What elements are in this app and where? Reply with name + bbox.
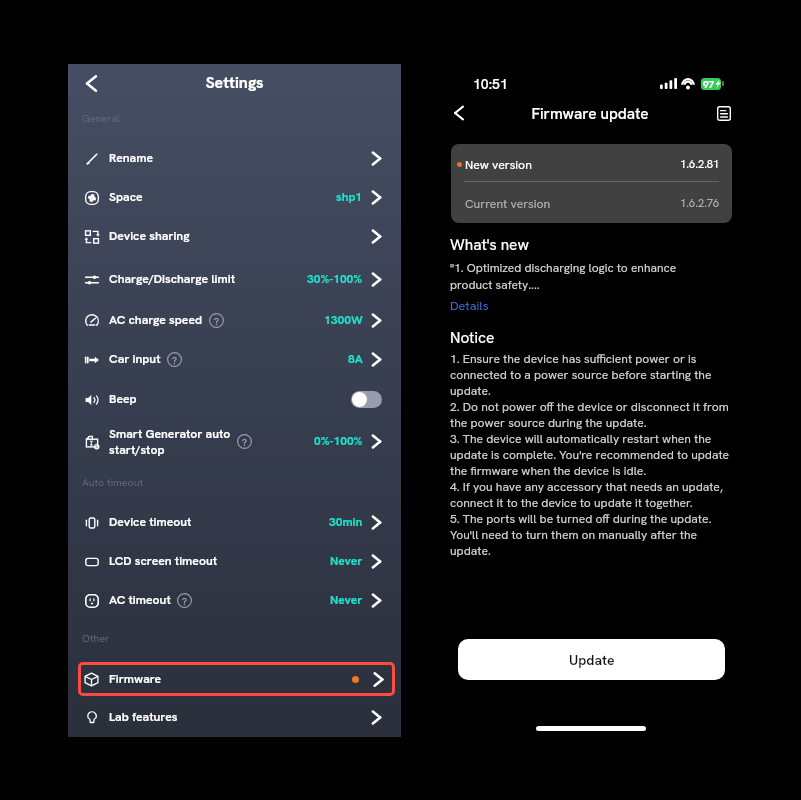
button[interactable]: Back (74, 66, 108, 100)
staticText: 8A (348, 351, 363, 367)
button[interactable]: Car input (68, 340, 401, 378)
staticText: 1. Ensure the device has sufficient powe… (450, 351, 733, 559)
button[interactable]: Space (68, 178, 401, 216)
staticText: Details (450, 297, 489, 313)
staticText: 10:51 (473, 75, 508, 93)
button[interactable]: Device timeout (68, 503, 401, 541)
staticText: ? (182, 595, 187, 607)
staticText: AC timeout (109, 592, 171, 608)
button[interactable]: Beep toggle (351, 391, 382, 408)
staticText: Settings (68, 72, 401, 93)
staticText: Device timeout (109, 514, 192, 530)
button[interactable]: Firmware (78, 662, 395, 696)
staticText: Current version (465, 196, 551, 212)
staticText: What's new (450, 235, 529, 255)
staticText: ? (242, 436, 247, 448)
staticText: General (82, 111, 120, 125)
staticText: ? (214, 315, 219, 327)
button[interactable]: Beep (68, 380, 401, 418)
staticText: Never (330, 553, 363, 569)
button[interactable]: LCD screen timeout (68, 542, 401, 580)
button[interactable]: Charge/Discharge limit (68, 260, 401, 298)
button[interactable]: Release notes (710, 99, 738, 127)
button[interactable]: Smart Generator auto start/stop (68, 422, 401, 460)
staticText: Car input (109, 351, 161, 367)
button[interactable]: Update (458, 639, 725, 680)
staticText: ? (172, 354, 177, 366)
staticText: 97 (703, 78, 715, 90)
staticText: 1.6.2.76 (680, 196, 720, 211)
staticText: Smart Generator auto start/stop (109, 426, 231, 457)
staticText: Auto timeout (82, 475, 144, 489)
staticText: Charge/Discharge limit (109, 271, 236, 287)
staticText: "1. Optimized discharging logic to enhan… (450, 260, 693, 293)
staticText: LCD screen timeout (109, 553, 218, 569)
staticText: Other (82, 631, 110, 645)
button[interactable]: Back (445, 99, 473, 127)
staticText: AC charge speed (109, 312, 203, 328)
button[interactable]: Details (450, 297, 489, 313)
staticText: New version (465, 157, 532, 173)
staticText: Device sharing (109, 228, 190, 244)
staticText: Lab features (109, 709, 178, 725)
staticText: 1300W (324, 312, 363, 328)
button[interactable]: Rename (68, 139, 401, 177)
staticText: Never (330, 592, 363, 608)
button[interactable]: AC timeout (68, 581, 401, 619)
staticText: Firmware update (435, 104, 745, 124)
staticText: Update (569, 651, 615, 669)
staticText: shp1 (336, 189, 363, 205)
button[interactable]: AC charge speed (68, 301, 401, 339)
staticText: 30%-100% (307, 271, 363, 287)
button[interactable]: Lab features (68, 698, 401, 736)
staticText: 0%-100% (314, 433, 363, 449)
button[interactable]: Device sharing (68, 217, 401, 255)
staticText: Beep (109, 391, 137, 407)
staticText: 1.6.2.81 (680, 157, 720, 172)
staticText: Rename (109, 150, 153, 166)
staticText: Space (109, 189, 143, 205)
staticText: Notice (450, 328, 495, 348)
staticText: Firmware (109, 671, 162, 687)
staticText: 30min (329, 514, 363, 530)
